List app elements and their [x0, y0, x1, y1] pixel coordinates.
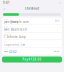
staticText: CITY — [4, 41, 7, 43]
staticText: EMAIL — [4, 18, 8, 20]
button[interactable]: Pay $128.00 — [2, 56, 62, 62]
staticText: Cupertino, CA — [4, 43, 25, 46]
staticText: ADDRESS — [4, 33, 11, 35]
staticText: NAME — [4, 26, 8, 28]
staticText: •••• 4242 — [4, 50, 17, 54]
staticText: 1 Infinite Loop — [4, 35, 26, 39]
staticText: Edit — [55, 19, 60, 23]
staticText: Pay $128.00 — [22, 58, 41, 61]
staticText: jane@example.com — [4, 20, 28, 24]
staticText: ▬▬ — [54, 50, 60, 53]
staticText: Checkout — [25, 7, 39, 10]
staticText: Jane Appleseed — [4, 28, 27, 31]
button[interactable]: Back — [2, 6, 6, 11]
staticText: 9:41 — [3, 1, 10, 4]
staticText: CARD — [4, 48, 8, 50]
